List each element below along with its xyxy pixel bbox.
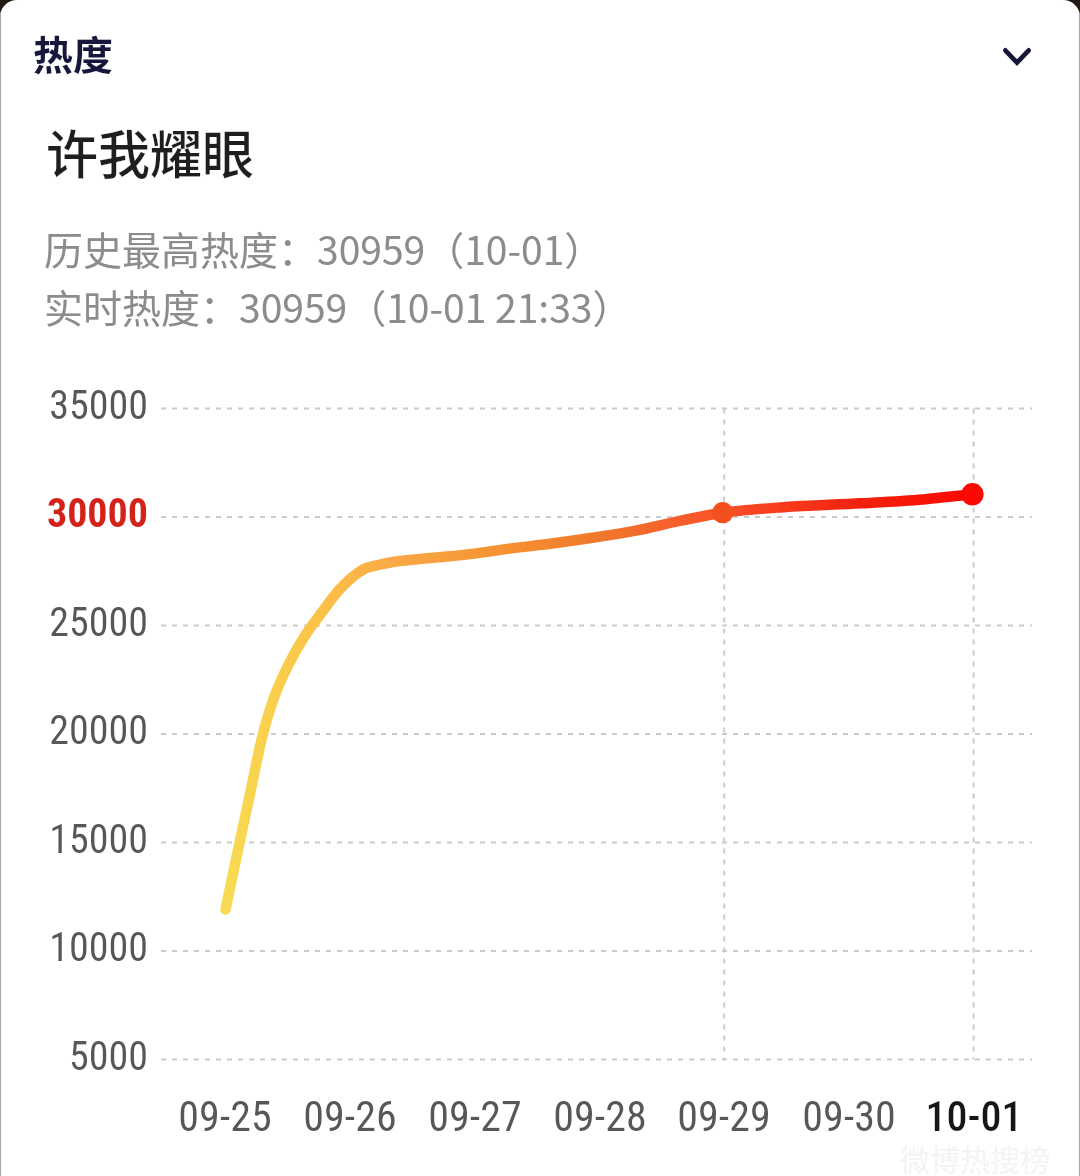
staticText: 09-29 xyxy=(654,1092,794,1141)
staticText: 20000 xyxy=(0,707,148,754)
staticText: 09-30 xyxy=(779,1092,919,1141)
button[interactable]: Collapse xyxy=(975,14,1059,98)
staticText: 35000 xyxy=(0,382,148,429)
staticText: 5000 xyxy=(0,1033,148,1080)
staticText: 09-28 xyxy=(530,1092,670,1141)
staticText: 09-27 xyxy=(405,1092,545,1141)
staticText: 10000 xyxy=(0,924,148,971)
staticText: 热度 xyxy=(33,24,113,82)
staticText: 微博热搜榜 xyxy=(900,1136,1050,1176)
staticText: 历史最高热度：30959（10-01） xyxy=(44,220,604,276)
staticText: 15000 xyxy=(0,816,148,863)
staticText: 实时热度：30959（10-01 21:33） xyxy=(44,278,632,334)
staticText: 30000 xyxy=(0,490,148,537)
staticText: 25000 xyxy=(0,599,148,646)
staticText: 09-26 xyxy=(280,1092,420,1141)
staticText: 10-01 xyxy=(904,1092,1044,1141)
staticText: 09-25 xyxy=(155,1092,295,1141)
staticText: 许我耀眼 xyxy=(46,114,255,189)
